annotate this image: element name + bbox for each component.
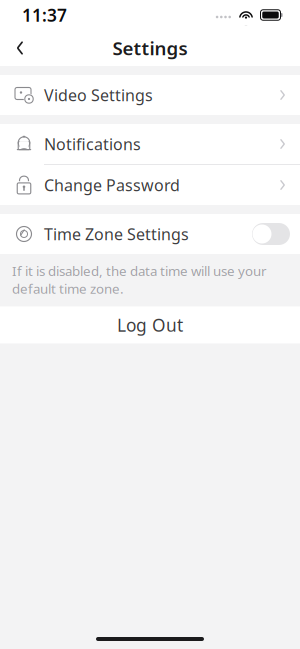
button[interactable]: Time Zone Settings <box>0 214 300 254</box>
staticText: Log Out <box>117 313 183 336</box>
staticText: Notifications <box>44 133 141 155</box>
button[interactable]: Notifications <box>0 124 300 164</box>
staticText: Change Password <box>44 174 180 196</box>
staticText: Video Settings <box>44 84 153 106</box>
button[interactable]: Back <box>0 31 40 65</box>
staticText: Time Zone Settings <box>44 223 189 245</box>
staticText: If it is disabled, the data time will us… <box>12 262 267 297</box>
staticText: 11:37 <box>22 3 67 26</box>
button[interactable]: Video Settings <box>0 75 300 115</box>
button[interactable]: Change Password <box>0 165 300 205</box>
button[interactable]: Log Out <box>0 306 300 343</box>
staticText: Settings <box>112 36 187 60</box>
